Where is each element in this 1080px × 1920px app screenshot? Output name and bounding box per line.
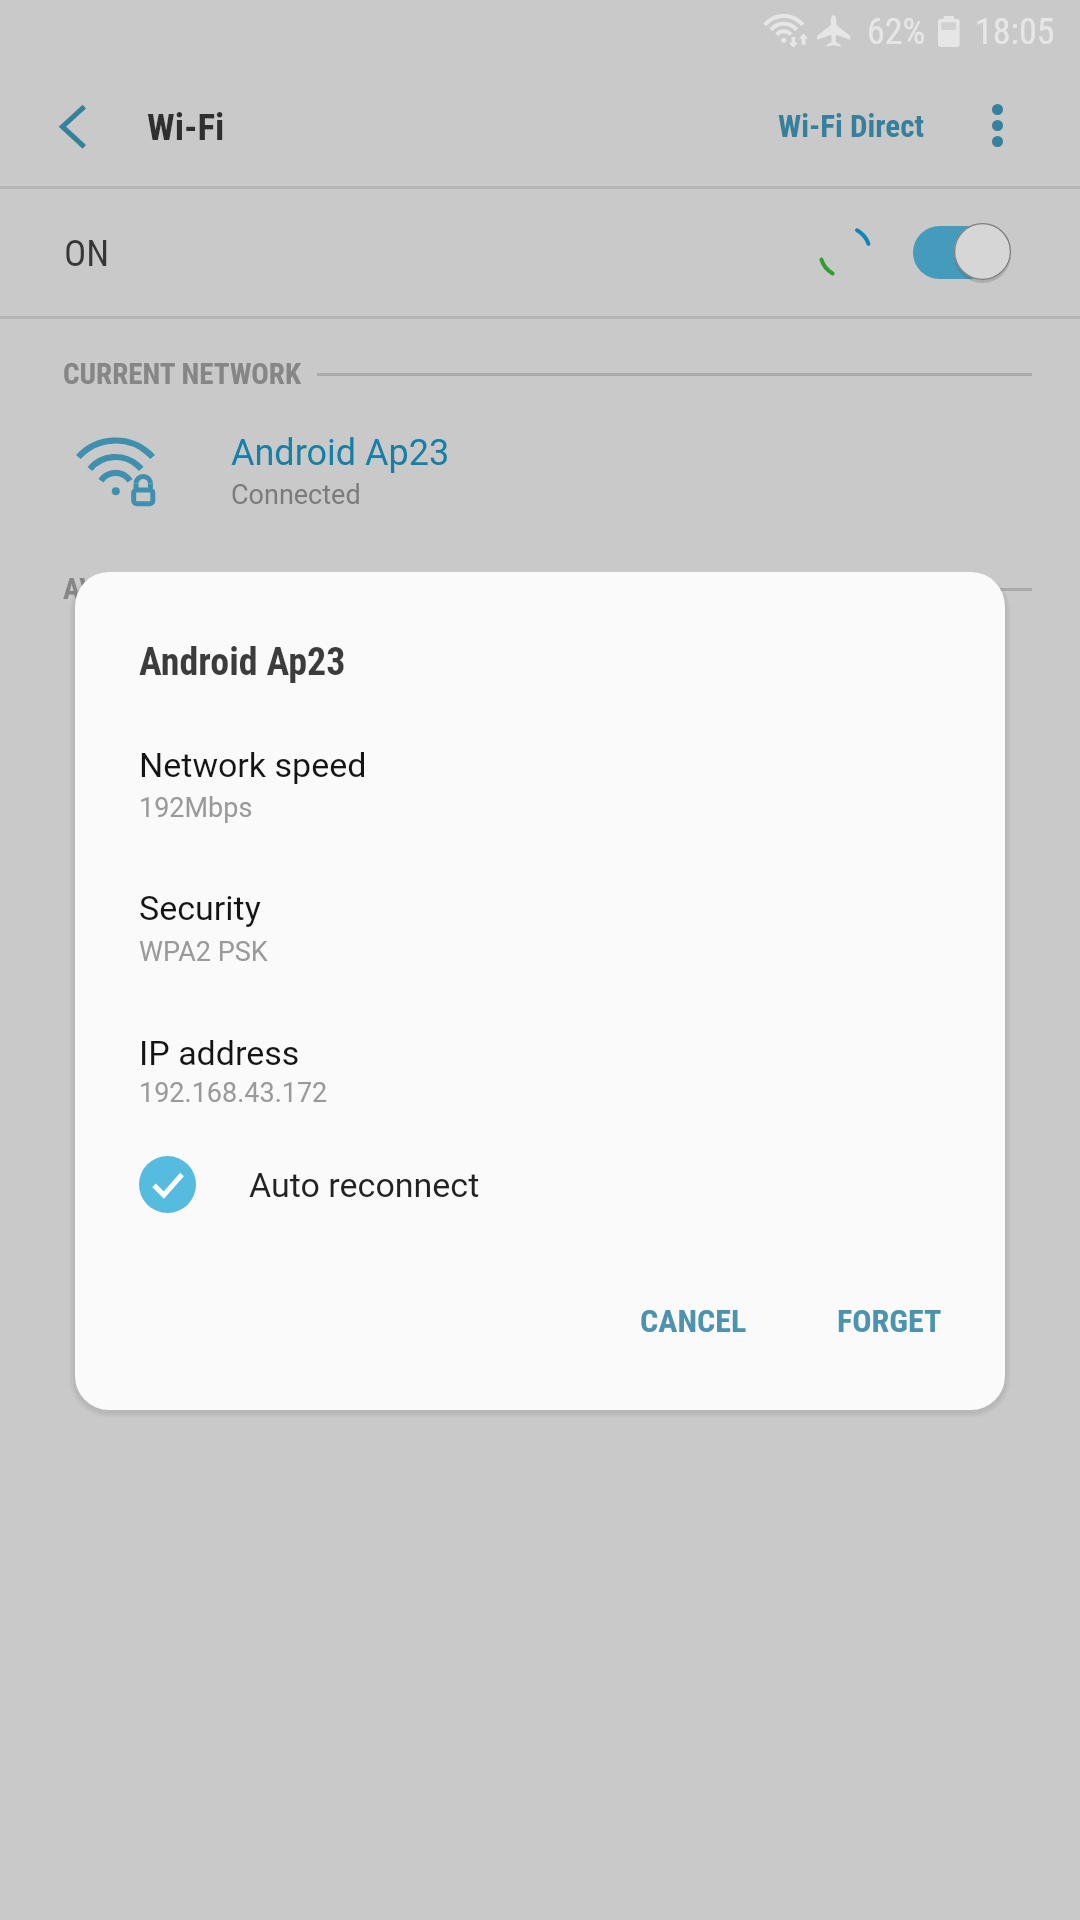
staticText: FORGET (837, 1302, 942, 1340)
staticText: IP address (139, 1033, 300, 1073)
staticText: ON (64, 232, 110, 275)
staticText: 192Mbps (139, 792, 253, 824)
staticText: Android Ap23 (139, 640, 346, 685)
button[interactable]: ON (0, 189, 1080, 316)
staticText: Security (139, 888, 261, 928)
staticText: AVAILABLE NETWORKS (63, 572, 338, 606)
button[interactable]: Wi-Fi on (913, 222, 1010, 281)
button[interactable]: Auto reconnect (123, 1140, 496, 1229)
staticText: Android Ap23 (231, 432, 450, 474)
button[interactable]: Android Ap23 (0, 412, 1080, 536)
staticText: Auto reconnect (249, 1165, 480, 1205)
button[interactable]: More options (948, 75, 1046, 173)
staticText: Network speed (139, 745, 367, 785)
button[interactable]: Wi-Fi Direct (750, 62, 952, 186)
button[interactable]: FORGET (813, 1280, 966, 1362)
staticText: Wi-Fi Direct (778, 108, 924, 144)
staticText: WPA2 PSK (139, 936, 268, 968)
staticText: Wi-Fi (147, 106, 225, 149)
staticText: 192.168.43.172 (139, 1077, 328, 1109)
button[interactable]: CANCEL (616, 1280, 771, 1362)
staticText: CANCEL (640, 1302, 747, 1340)
staticText: Connected (231, 479, 361, 511)
staticText: 62% (867, 11, 926, 53)
staticText: CURRENT NETWORK (63, 357, 301, 391)
staticText: 18:05 (975, 11, 1055, 53)
button[interactable]: Navigate up (26, 78, 118, 170)
